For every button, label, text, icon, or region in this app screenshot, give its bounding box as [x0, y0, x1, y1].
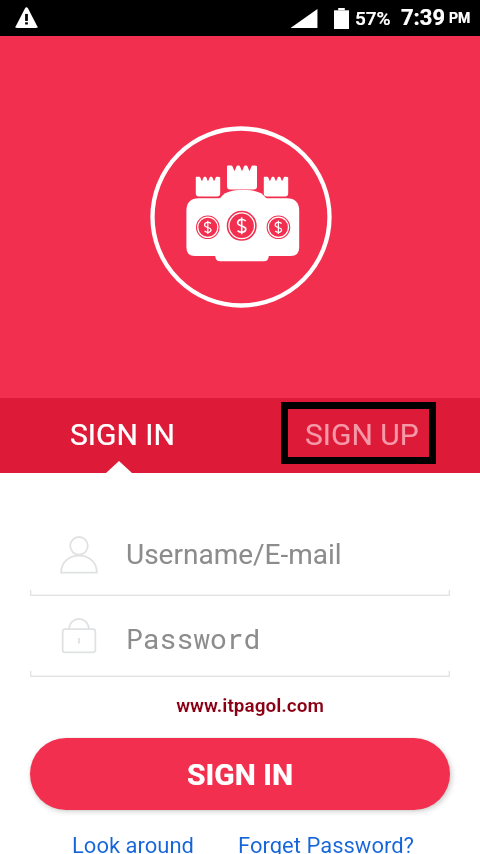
button[interactable]: Look around — [72, 833, 194, 854]
button[interactable]: SIGN UP — [281, 402, 436, 464]
staticText: Password — [126, 620, 261, 657]
staticText: PM — [449, 10, 471, 26]
staticText: SIGN IN — [70, 417, 175, 452]
staticText: 7:39 — [401, 5, 446, 31]
other: Warning — [14, 6, 39, 28]
staticText: SIGN IN — [187, 757, 294, 792]
button[interactable]: SIGN IN — [0, 398, 240, 473]
staticText: www.itpagol.com — [10, 694, 480, 716]
staticText: Username/E-mail — [126, 538, 342, 571]
button[interactable]: SIGN IN — [30, 738, 450, 810]
staticText: SIGN UP — [305, 417, 419, 452]
button[interactable]: Forget Password? — [238, 833, 414, 854]
staticText: 57% — [355, 7, 391, 29]
